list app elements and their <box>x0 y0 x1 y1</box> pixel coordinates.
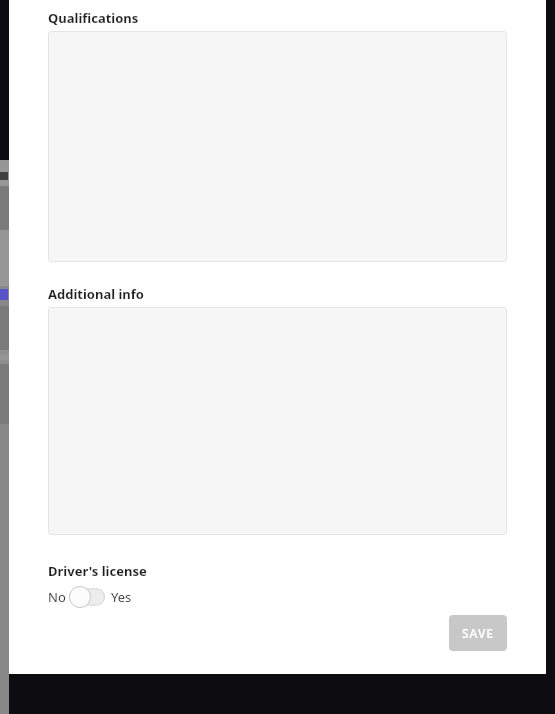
staticText: No <box>48 588 66 606</box>
button[interactable]: SAVE <box>449 615 507 651</box>
button[interactable]: Driver's license, No <box>69 586 105 608</box>
staticText: SAVE <box>462 625 495 641</box>
staticText: Qualifications <box>48 9 139 27</box>
staticText: Yes <box>111 588 132 606</box>
staticText: Additional info <box>48 285 144 303</box>
staticText: Driver's license <box>48 562 147 580</box>
